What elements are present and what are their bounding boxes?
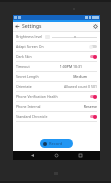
staticText: Reserve [83, 104, 97, 109]
staticText: Brightness level [16, 34, 43, 39]
staticText: Medium [73, 74, 87, 79]
button[interactable]: Recent apps [76, 151, 85, 160]
button[interactable]: Secret Length [13, 72, 100, 81]
button[interactable]: Dark Skin [13, 52, 100, 61]
staticText: Settings [22, 23, 42, 30]
button[interactable]: Timeout [13, 62, 100, 71]
button[interactable]: Navigate up [14, 23, 21, 30]
button[interactable]: Home [52, 151, 61, 160]
staticText: Allowed count 0 501 [63, 84, 97, 89]
staticText: Dark Skin [16, 54, 87, 59]
staticText: 1:00PM 10:31 [59, 64, 82, 69]
staticText: Adapt Screen On [16, 44, 87, 49]
staticText: Orientate Database (allowed) [16, 84, 39, 89]
staticText: Secret Length [16, 74, 39, 79]
staticText: Timeout [16, 64, 30, 69]
staticText: Phone Verification Health [16, 94, 87, 99]
button[interactable]: Orientate Database (allowed) [13, 82, 100, 91]
button[interactable]: Phone Internal Verification Developer [13, 102, 100, 111]
button[interactable]: Brightness level [13, 32, 100, 41]
staticText: Record [49, 141, 63, 146]
button[interactable]: Adapt Screen On [13, 42, 100, 51]
button[interactable]: Settings [92, 23, 99, 30]
staticText: Standard Chronicle [16, 114, 87, 119]
button[interactable]: Back [28, 151, 37, 160]
button[interactable]: Phone Verification Health [13, 92, 100, 101]
staticText: Phone Internal Verification Developer [16, 104, 49, 109]
button[interactable]: Record [40, 139, 73, 148]
button[interactable]: Standard Chronicle [13, 112, 100, 121]
